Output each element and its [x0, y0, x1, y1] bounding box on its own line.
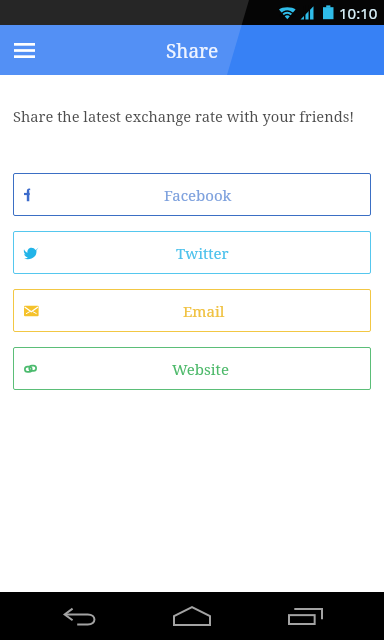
staticText: Email: [183, 301, 225, 321]
button[interactable]: Recent apps: [257, 592, 353, 640]
button[interactable]: Twitter: [13, 231, 371, 274]
staticText: Twitter: [176, 243, 229, 263]
staticText: Share the latest exchange rate with your…: [13, 106, 355, 126]
button[interactable]: Back: [32, 592, 128, 640]
staticText: 10:10: [339, 3, 378, 23]
staticText: Facebook: [164, 185, 232, 205]
button[interactable]: Facebook: [13, 173, 371, 216]
button[interactable]: Open navigation menu: [0, 25, 48, 75]
staticText: Share: [166, 38, 219, 64]
button[interactable]: Email: [13, 289, 371, 332]
button[interactable]: Home: [144, 592, 240, 640]
staticText: Website: [172, 359, 229, 379]
button[interactable]: Website: [13, 347, 371, 390]
